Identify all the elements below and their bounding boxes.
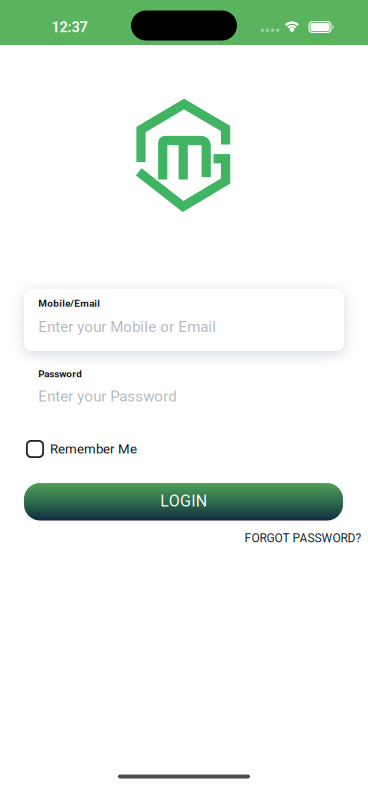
button[interactable]: LOGIN [24,483,343,520]
staticText: Mobile/Email [38,297,100,309]
staticText: 12:37 [51,19,87,36]
button[interactable]: Password [24,368,344,420]
button[interactable]: FORGOT PASSWORD? [244,531,361,545]
staticText: LOGIN [160,492,207,510]
staticText: Remember Me [50,441,137,457]
staticText: FORGOT PASSWORD? [244,531,361,545]
staticText: Enter your Mobile or Email [38,318,216,336]
staticText: Enter your Password [38,387,176,405]
button[interactable]: Mobile/Email [24,289,344,351]
staticText: Password [38,368,82,380]
button[interactable]: Remember Me [26,440,137,458]
